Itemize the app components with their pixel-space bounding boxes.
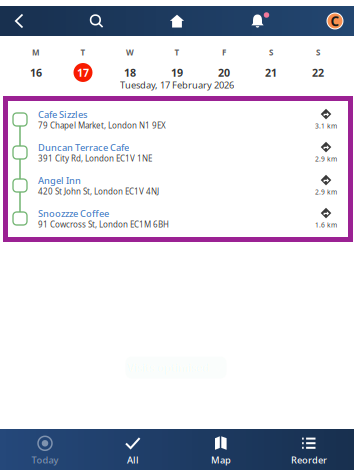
staticText: Angel Inn [38, 174, 81, 187]
button[interactable]: Home [155, 6, 199, 36]
button[interactable]: Today [1, 429, 89, 470]
staticText: 2.9 km [315, 188, 337, 196]
button[interactable]: Angel Inn [8, 169, 348, 202]
staticText: 20 [218, 65, 230, 80]
staticText: C [330, 12, 339, 30]
button[interactable]: Duncan Terrace Cafe [8, 136, 348, 169]
staticText: Snoozzze Coffee [38, 207, 109, 220]
button[interactable]: Search [74, 6, 118, 36]
staticText: W [126, 47, 134, 58]
staticText: M [32, 47, 40, 58]
staticText: S [269, 47, 273, 58]
staticText: 1.6 km [315, 221, 337, 229]
button[interactable]: All [89, 429, 177, 470]
button[interactable]: Map [177, 429, 265, 470]
staticText: 22 [312, 65, 324, 80]
staticText: F [222, 47, 226, 58]
button[interactable]: T [59, 48, 106, 82]
staticText: 91 Cowcross St, London EC1M 6BH [38, 219, 169, 230]
button[interactable]: S [247, 48, 294, 82]
staticText: S [316, 47, 320, 58]
staticText: Cafe Sizzles [38, 108, 88, 121]
button[interactable]: Notifications [235, 6, 279, 36]
staticText: Reorder [291, 454, 327, 466]
staticText: 420 St John St, London EC1V 4NJ [38, 186, 159, 197]
staticText: 3.1 km [315, 122, 337, 130]
button[interactable]: F [200, 48, 247, 82]
staticText: T [174, 47, 179, 58]
button[interactable]: T [153, 48, 200, 82]
button[interactable]: S [294, 48, 341, 82]
staticText: Tuesday, 17 February 2026 [120, 79, 234, 91]
staticText: 79 Chapel Market, London N1 9EX [38, 120, 166, 131]
staticText: Map [211, 454, 231, 466]
staticText: Duncan Terrace Cafe [38, 141, 129, 154]
button[interactable]: Cafe Sizzles [8, 103, 348, 136]
staticText: 17 [77, 65, 89, 80]
staticText: T [80, 47, 85, 58]
button[interactable]: Reorder [265, 429, 353, 470]
button[interactable]: W [106, 48, 153, 82]
staticText: 391 City Rd, London EC1V 1NE [38, 153, 152, 164]
button[interactable]: Snoozzze Coffee [8, 202, 348, 235]
staticText: 16 [30, 65, 42, 80]
staticText: 2.9 km [315, 155, 337, 163]
button[interactable]: M [12, 48, 59, 82]
staticText: 18 [124, 65, 136, 80]
staticText: 21 [265, 65, 277, 80]
staticText: Today [31, 454, 58, 466]
button[interactable]: Back [0, 6, 38, 36]
staticText: All [127, 454, 139, 466]
staticText: 19 [171, 65, 183, 80]
staticText: Visits optimised [127, 360, 209, 375]
button[interactable]: Profile [316, 6, 354, 36]
